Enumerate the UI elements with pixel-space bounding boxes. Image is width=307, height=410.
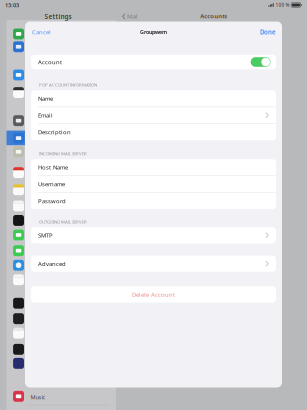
button[interactable]: Done xyxy=(256,21,276,42)
button[interactable]: Cancel xyxy=(31,21,55,42)
button[interactable]: Password xyxy=(31,193,276,209)
staticText: Username xyxy=(38,180,65,188)
button[interactable]: Mail xyxy=(122,11,137,21)
staticText: Email xyxy=(38,111,53,119)
staticText: Password xyxy=(38,197,66,205)
staticText: OUTGOING MAIL SERVER xyxy=(39,219,87,225)
staticText: 13:03 xyxy=(5,1,19,9)
button[interactable]: Description xyxy=(31,124,276,140)
button[interactable]: Name xyxy=(31,90,276,107)
button[interactable]: SMTP xyxy=(31,227,276,243)
button[interactable]: Delete Account xyxy=(31,286,276,302)
staticText: Name xyxy=(38,94,53,102)
button[interactable]: Username xyxy=(31,176,276,192)
staticText: Accounts xyxy=(200,12,227,20)
button[interactable]: Advanced xyxy=(31,255,276,272)
button[interactable]: Host Name xyxy=(31,159,276,175)
staticText: Done xyxy=(260,28,276,36)
staticText: Settings xyxy=(44,12,71,21)
staticText: Description xyxy=(38,128,71,136)
staticText: Host Name xyxy=(38,163,68,171)
button[interactable]: Account xyxy=(31,55,276,69)
staticText: Delete Account xyxy=(132,290,175,298)
staticText: Mail xyxy=(127,13,137,20)
staticText: INCOMING MAIL SERVER xyxy=(39,151,87,157)
staticText: Music xyxy=(30,393,45,401)
staticText: POP ACCOUNT INFORMATION xyxy=(39,82,97,88)
staticText: SMTP xyxy=(38,231,53,239)
staticText: Groupwem xyxy=(140,28,167,36)
staticText: Advanced xyxy=(38,260,66,268)
staticText: 100 % xyxy=(275,2,289,8)
button[interactable]: Email xyxy=(31,107,276,123)
staticText: Cancel xyxy=(32,28,51,36)
staticText: Account xyxy=(38,58,62,66)
